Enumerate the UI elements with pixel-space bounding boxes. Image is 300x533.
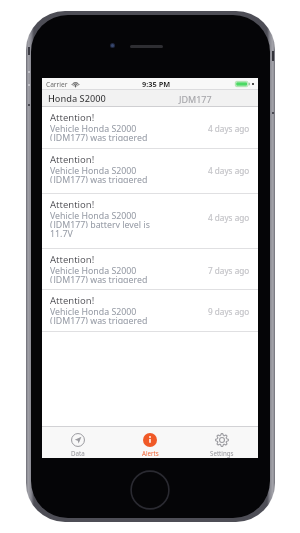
- other: Alerts: [143, 433, 157, 447]
- button[interactable]: Attention!: [42, 107, 258, 149]
- staticText: Vehicle Honda S2000: [50, 165, 137, 174]
- staticText: Vehicle Honda S2000: [50, 123, 137, 132]
- staticText: Alerts: [142, 449, 159, 457]
- button[interactable]: Data: [42, 426, 114, 458]
- staticText: Attention!: [50, 253, 95, 265]
- staticText: Vehicle Honda S2000: [50, 265, 137, 274]
- staticText: Attention!: [50, 111, 95, 123]
- staticText: Vehicle Honda S2000: [50, 210, 137, 219]
- staticText: Attention!: [50, 198, 95, 210]
- staticText: 4 days ago: [208, 123, 250, 134]
- button[interactable]: Attention!: [42, 249, 258, 290]
- button[interactable]: Settings: [186, 426, 258, 458]
- staticText: (JDM177) battery level is: [50, 219, 150, 228]
- staticText: JDM177: [179, 93, 212, 105]
- staticText: Honda S2000: [48, 92, 106, 105]
- staticText: (JDM177) was triggered: [50, 315, 148, 324]
- staticText: (JDM177) was triggered: [50, 274, 148, 283]
- staticText: Vehicle Honda S2000: [50, 306, 137, 315]
- button[interactable]: Alerts: [114, 426, 186, 458]
- staticText: 9:35 PM: [142, 79, 171, 89]
- button[interactable]: Attention!: [42, 149, 258, 194]
- button[interactable]: Attention!: [42, 290, 258, 332]
- staticText: Data: [71, 449, 85, 457]
- button[interactable]: Attention!: [42, 194, 258, 249]
- staticText: 4 days ago: [208, 165, 250, 176]
- staticText: 9 days ago: [208, 306, 250, 317]
- staticText: 11.7V: [50, 228, 73, 237]
- staticText: Settings: [210, 449, 234, 457]
- staticText: (JDM177) was triggered: [50, 174, 148, 183]
- staticText: Attention!: [50, 153, 95, 165]
- other: Settings: [215, 433, 229, 447]
- staticText: 7 days ago: [208, 265, 250, 276]
- staticText: 4 days ago: [208, 212, 250, 223]
- staticText: (JDM177) was triggered: [50, 132, 148, 141]
- staticText: Carrier: [46, 80, 68, 89]
- other: Data: [71, 433, 85, 447]
- staticText: Attention!: [50, 294, 95, 306]
